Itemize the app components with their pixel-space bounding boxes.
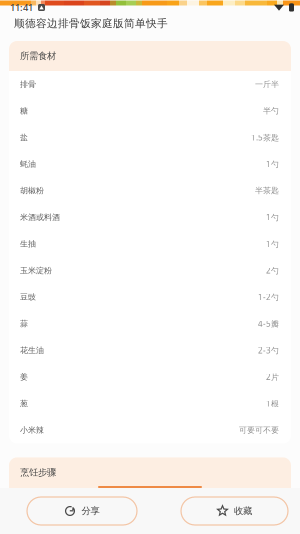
staticText: 1-2勺 xyxy=(258,292,279,302)
staticText: 1.5茶匙 xyxy=(251,132,279,143)
button[interactable]: 收藏 xyxy=(181,497,288,525)
staticText: 排骨 xyxy=(20,79,36,89)
staticText: 烹饪步骤 xyxy=(20,467,56,478)
staticText: 葱 xyxy=(20,399,28,408)
staticText: 顺德容边排骨饭家庭版简单快手 xyxy=(14,17,168,30)
staticText: 一斤半 xyxy=(255,79,279,89)
staticText: 盐 xyxy=(20,133,28,142)
staticText: 蒜 xyxy=(20,319,28,329)
staticText: 生抽 xyxy=(20,239,36,249)
staticText: 半勺 xyxy=(263,106,279,116)
staticText: 所需食材 xyxy=(20,50,56,62)
staticText: 蚝油 xyxy=(20,159,36,169)
staticText: 1勺 xyxy=(266,239,279,249)
staticText: 2片 xyxy=(266,372,279,382)
staticText: 4-5瓣 xyxy=(258,318,279,329)
staticText: 1根 xyxy=(266,398,279,409)
staticText: 小米辣 xyxy=(20,425,44,435)
staticText: 半茶匙 xyxy=(255,186,279,196)
staticText: 豆豉 xyxy=(20,292,36,302)
staticText: 1勺 xyxy=(266,159,279,169)
staticText: 分享 xyxy=(81,505,99,517)
staticText: 1勺 xyxy=(266,212,279,223)
staticText: 姜 xyxy=(20,372,28,382)
staticText: 玉米淀粉 xyxy=(20,266,52,275)
staticText: 米酒或料酒 xyxy=(20,212,60,222)
staticText: 可要可不要 xyxy=(239,425,279,435)
staticText: 花生油 xyxy=(20,345,44,355)
staticText: 收藏 xyxy=(234,505,252,517)
staticText: 糖 xyxy=(20,106,28,116)
staticText: 2-3勺 xyxy=(258,345,279,356)
staticText: 11:41 xyxy=(10,1,33,14)
staticText: 2勺 xyxy=(266,265,279,276)
button[interactable]: 分享 xyxy=(27,497,137,525)
staticText: 胡椒粉 xyxy=(20,186,44,196)
